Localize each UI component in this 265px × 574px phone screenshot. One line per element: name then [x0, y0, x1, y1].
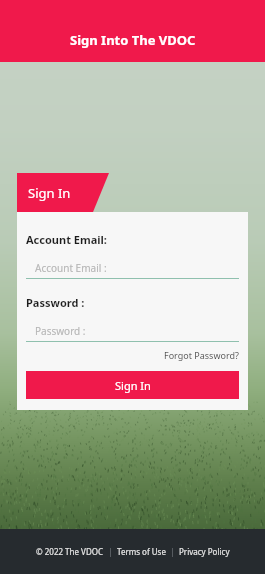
button[interactable]: Privacy Policy [179, 546, 230, 557]
staticText: | [104, 546, 117, 557]
button[interactable]: Account Email : [26, 258, 239, 278]
staticText: Sign Into The VDOC [70, 31, 196, 49]
staticText: Account Email: [26, 232, 107, 247]
staticText: Account Email : [35, 261, 107, 275]
staticText: Password : [26, 295, 85, 310]
button[interactable]: Password : [26, 321, 239, 341]
button[interactable]: Sign In [17, 173, 109, 212]
staticText: Sign In [28, 184, 71, 202]
button[interactable]: Terms of Use [117, 546, 166, 557]
staticText: © 2022 The VDOC [36, 546, 104, 557]
staticText: Password : [35, 324, 86, 338]
button[interactable]: Sign In [26, 371, 239, 399]
staticText: Sign In [115, 378, 151, 393]
button[interactable]: Forgot Password? [164, 349, 239, 361]
staticText: | [166, 546, 179, 557]
